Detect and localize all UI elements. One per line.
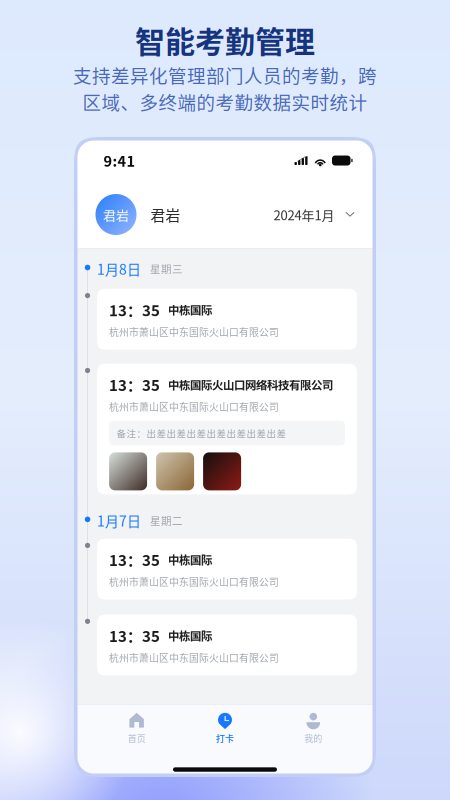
staticText: 君岩 bbox=[150, 204, 180, 225]
staticText: 1月7日 bbox=[97, 510, 141, 531]
staticText: 杭州市萧山区中东国际火山口有限公司 bbox=[109, 574, 279, 589]
button[interactable]: 2024年1月 bbox=[273, 205, 354, 224]
staticText: 智能考勤管理 bbox=[135, 18, 315, 61]
staticText: 中栋国际火山口网络科技有限公司 bbox=[168, 376, 333, 393]
staticText: 2024年1月 bbox=[273, 205, 334, 224]
staticText: 1月8日 bbox=[97, 258, 141, 279]
staticText: 杭州市萧山区中东国际火山口有限公司 bbox=[109, 399, 279, 414]
staticText: 13：35 bbox=[109, 299, 160, 320]
button[interactable]: 打卡 bbox=[181, 713, 269, 745]
staticText: 我的 bbox=[304, 732, 322, 745]
button[interactable]: 首页 bbox=[92, 713, 181, 745]
button[interactable]: 我的 bbox=[269, 713, 357, 745]
staticText: 星期三 bbox=[150, 261, 183, 276]
staticText: 备注：出差出差出差出差出差出差出差 bbox=[117, 426, 287, 440]
staticText: 中栋国际 bbox=[168, 627, 212, 644]
staticText: 杭州市萧山区中东国际火山口有限公司 bbox=[109, 324, 279, 339]
staticText: 13：35 bbox=[109, 374, 160, 395]
staticText: 13：35 bbox=[109, 624, 160, 646]
staticText: 打卡 bbox=[216, 732, 234, 745]
staticText: 君岩 bbox=[103, 205, 129, 224]
staticText: 9:41 bbox=[103, 150, 135, 171]
staticText: 中栋国际 bbox=[168, 551, 212, 568]
staticText: 杭州市萧山区中东国际火山口有限公司 bbox=[109, 650, 279, 664]
staticText: 13：35 bbox=[109, 549, 160, 570]
staticText: 支持差异化管理部门人员的考勤，跨 bbox=[73, 61, 377, 88]
staticText: 首页 bbox=[128, 732, 146, 745]
staticText: 中栋国际 bbox=[168, 301, 212, 318]
staticText: 区域、多终端的考勤数据实时统计 bbox=[82, 88, 367, 115]
staticText: 星期二 bbox=[150, 513, 183, 528]
